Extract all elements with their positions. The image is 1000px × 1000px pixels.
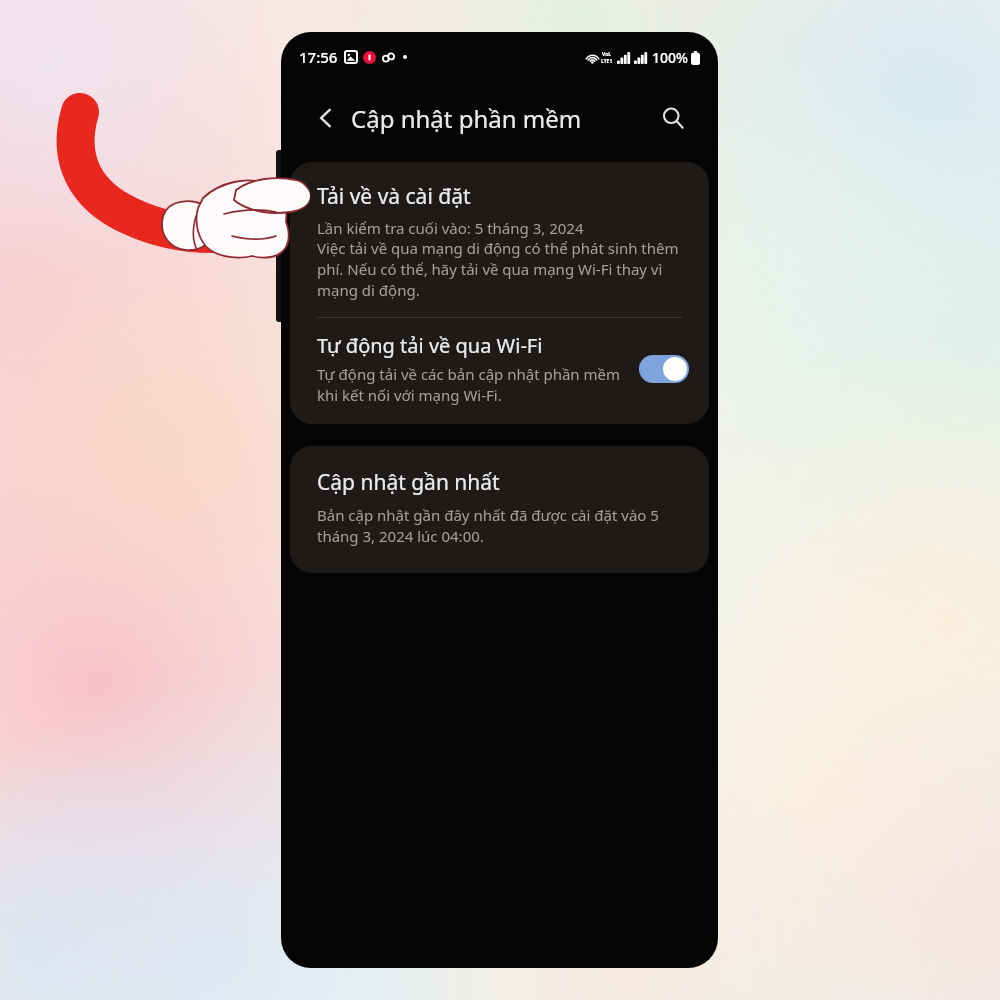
staticText: Tải về và cài đặt [317, 182, 471, 211]
button[interactable]: Back [309, 101, 343, 135]
staticText: Lần kiểm tra cuối vào: 5 tháng 3, 2024 [317, 218, 584, 238]
button[interactable]: Search [654, 99, 692, 137]
staticText: 17:56 [299, 47, 338, 67]
staticText: LTE1 [601, 58, 613, 65]
button[interactable]: Cập nhật gần nhất [290, 446, 709, 573]
staticText: Cập nhật gần nhất [317, 468, 500, 497]
button[interactable]: Tải về và cài đặt [290, 162, 709, 317]
staticText: Việc tải về qua mạng di động có thể phát… [317, 238, 687, 301]
button[interactable]: Auto download over Wi-Fi toggle [639, 355, 689, 383]
staticText: 100% [652, 48, 688, 67]
staticText: Tự động tải về các bản cập nhật phần mềm… [317, 364, 629, 406]
staticText: Tự động tải về qua Wi-Fi [317, 332, 543, 359]
staticText: VoL [602, 51, 612, 58]
staticText: Cập nhật phần mềm [351, 102, 582, 135]
staticText: Bản cập nhật gần đây nhất đã được cài đặ… [317, 505, 687, 547]
button[interactable]: Tự động tải về qua Wi-Fi [290, 318, 709, 424]
